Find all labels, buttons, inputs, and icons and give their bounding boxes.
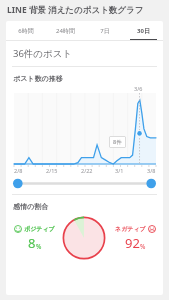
button[interactable]: ネガティブ	[115, 225, 156, 252]
button[interactable]: 30日	[124, 21, 163, 40]
button[interactable]: 6時間	[6, 21, 46, 40]
staticText: 2/8	[14, 167, 23, 174]
staticText: 3/6	[134, 85, 143, 92]
staticText: %	[140, 242, 146, 251]
staticText: 30日	[137, 27, 150, 35]
staticText: 6時間	[18, 27, 34, 35]
staticText: ポスト数の推移	[13, 74, 63, 83]
staticText: 2/22	[81, 167, 93, 174]
staticText: 36件のポスト	[13, 47, 73, 60]
button[interactable]: 24時間	[46, 21, 85, 40]
staticText: 8件	[113, 138, 122, 146]
staticText: ネガティブ	[115, 225, 146, 233]
staticText: ポジティブ	[24, 225, 55, 233]
staticText: 3/1	[115, 167, 124, 174]
staticText: %	[36, 242, 42, 251]
staticText: 8	[28, 234, 36, 252]
staticText: 3/8	[147, 167, 156, 174]
button[interactable]: Date range slider	[13, 177, 156, 190]
staticText: 92	[125, 234, 140, 252]
staticText: 24時間	[56, 27, 75, 35]
button[interactable]: 7日	[85, 21, 124, 40]
button[interactable]: ポジティブ	[14, 225, 55, 252]
staticText: 感情の割合	[13, 202, 49, 211]
staticText: 2/15	[46, 167, 58, 174]
staticText: LINE 背景 消えたのポスト数グラフ	[7, 4, 144, 16]
staticText: 7日	[100, 27, 110, 35]
